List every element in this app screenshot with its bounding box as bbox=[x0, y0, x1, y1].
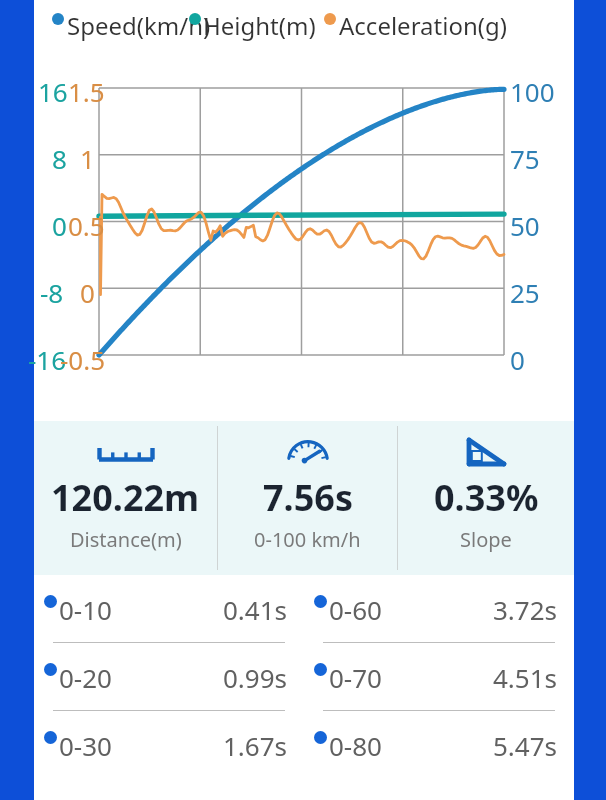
button[interactable]: 0-60 bbox=[304, 575, 574, 643]
staticText: -8 bbox=[40, 275, 64, 310]
staticText: -16 bbox=[28, 342, 67, 377]
staticText: 0-10 bbox=[59, 592, 112, 627]
staticText: 8 bbox=[52, 141, 67, 176]
button[interactable]: 0-10 bbox=[34, 575, 304, 643]
staticText: Height(m) bbox=[203, 9, 316, 42]
button[interactable]: 0-80 bbox=[304, 711, 574, 779]
button[interactable]: 0-70 bbox=[304, 643, 574, 711]
staticText: 0-70 bbox=[329, 660, 382, 695]
staticText: 0.99s bbox=[223, 660, 288, 695]
staticText: 4.51s bbox=[493, 660, 558, 695]
staticText: 7.56s bbox=[263, 473, 353, 522]
staticText: 0.33% bbox=[434, 473, 539, 522]
staticText: 0-60 bbox=[329, 592, 382, 627]
staticText: Acceleration(g) bbox=[339, 9, 507, 42]
staticText: 1.5 bbox=[68, 74, 105, 109]
staticText: 0.41s bbox=[223, 592, 288, 627]
staticText: 120.22m bbox=[51, 473, 200, 522]
staticText: Speed(km/h) bbox=[67, 9, 211, 42]
staticText: Slope bbox=[460, 526, 512, 553]
staticText: 5.47s bbox=[493, 728, 558, 763]
staticText: 0 bbox=[80, 275, 95, 310]
staticText: 75 bbox=[510, 141, 540, 176]
staticText: 0-80 bbox=[329, 728, 382, 763]
button[interactable]: 0-30 bbox=[34, 711, 304, 779]
staticText: 1 bbox=[80, 141, 95, 176]
staticText: 0 bbox=[510, 342, 525, 377]
staticText: 100 bbox=[510, 74, 555, 109]
button[interactable]: 0-20 bbox=[34, 643, 304, 711]
button[interactable]: Distance bbox=[34, 421, 217, 575]
staticText: 0-100 km/h bbox=[254, 526, 361, 553]
staticText: 25 bbox=[510, 275, 540, 310]
staticText: -0.5 bbox=[60, 342, 106, 377]
staticText: 0.5 bbox=[68, 208, 105, 243]
staticText: Distance(m) bbox=[70, 526, 182, 553]
button[interactable]: Acceleration time bbox=[218, 421, 397, 575]
staticText: 50 bbox=[510, 208, 540, 243]
staticText: 16 bbox=[38, 74, 68, 109]
staticText: 0 bbox=[52, 208, 67, 243]
button[interactable]: Slope bbox=[398, 421, 574, 575]
staticText: 3.72s bbox=[493, 592, 558, 627]
staticText: 1.67s bbox=[223, 728, 288, 763]
staticText: 0-20 bbox=[59, 660, 112, 695]
staticText: 0-30 bbox=[59, 728, 112, 763]
